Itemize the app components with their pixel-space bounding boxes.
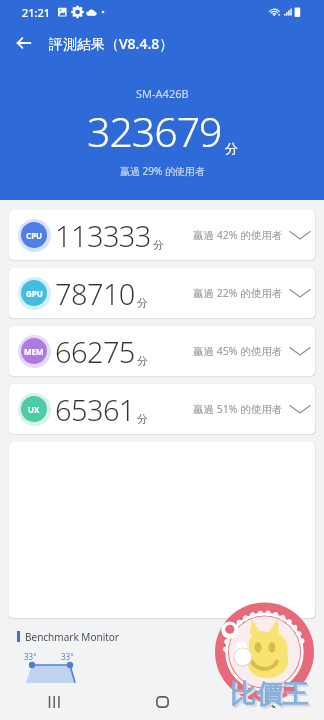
staticText: 贏過 29% 的使用者 (120, 164, 205, 178)
staticText: 贏過 42% 的使用者 (193, 228, 283, 242)
button[interactable]: MEM (9, 326, 315, 376)
staticText: 113333 (55, 216, 151, 255)
staticText: 分 (137, 354, 148, 368)
button[interactable]: Home (108, 683, 216, 720)
staticText: 贏過 22% 的使用者 (193, 286, 283, 300)
staticText: 贏過 45% 的使用者 (193, 344, 283, 358)
staticText: 贏過 51% 的使用者 (193, 402, 283, 416)
staticText: 比價王 (230, 678, 308, 711)
button[interactable]: Back (216, 683, 324, 720)
staticText: 分 (153, 238, 164, 252)
button[interactable]: GPU (9, 268, 315, 318)
staticText: 323679 (87, 103, 222, 159)
button[interactable]: UX (9, 384, 315, 434)
staticText: CPU (26, 230, 43, 241)
staticText: SM-A426B (136, 86, 189, 101)
button[interactable]: CPU (9, 210, 315, 260)
staticText: 78710 (55, 274, 135, 313)
staticText: UX (28, 404, 40, 415)
staticText: 分 (137, 412, 148, 426)
staticText: GPU (26, 288, 43, 299)
button[interactable]: Back (0, 21, 46, 65)
staticText: MEM (24, 346, 44, 357)
staticText: 65361 (55, 390, 135, 429)
staticText: 分 (137, 296, 148, 310)
staticText: 分 (225, 140, 238, 156)
staticText: 33° (61, 651, 74, 662)
staticText: 21:21 (22, 5, 51, 20)
staticText: Benchmark Monitor (25, 630, 119, 642)
staticText: 比價王 (232, 680, 310, 713)
staticText: 評測結果（V8.4.8） (49, 34, 174, 53)
staticText: 66275 (55, 332, 135, 371)
button[interactable]: Recent apps (0, 683, 108, 720)
staticText: 33° (24, 651, 37, 662)
